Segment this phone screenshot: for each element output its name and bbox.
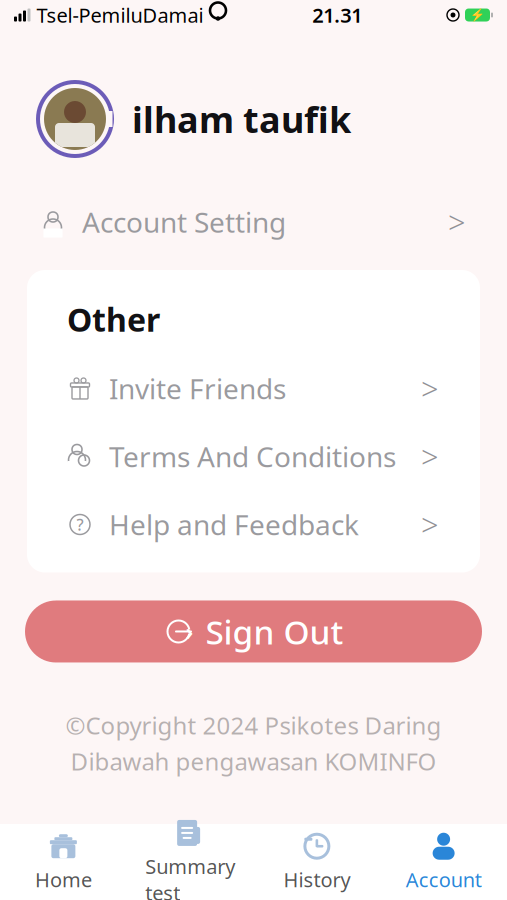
staticText: Other	[67, 298, 160, 340]
staticText: ›	[185, 616, 193, 646]
staticText: Sign Out	[205, 609, 343, 654]
button[interactable]: Account Setting	[0, 188, 507, 256]
staticText: ⚡	[470, 8, 485, 22]
button[interactable]: Invite Friends	[27, 354, 480, 422]
button[interactable]: History	[253, 826, 380, 898]
button[interactable]: Home	[0, 826, 127, 898]
staticText: Tsel-PemiluDamai	[36, 2, 203, 28]
button[interactable]: Account	[380, 826, 507, 898]
staticText: Home	[35, 866, 92, 893]
staticText: ?	[76, 514, 83, 535]
staticText: Terms And Conditions	[109, 438, 396, 475]
staticText: 21.31	[312, 2, 362, 28]
staticText: Summary test	[145, 853, 235, 900]
staticText: >	[421, 504, 439, 545]
staticText: ©Copyright 2024 Psikotes Daring	[65, 709, 441, 741]
staticText: ilham taufik	[132, 95, 351, 143]
button[interactable]: Terms And Conditions	[27, 422, 480, 490]
staticText: >	[421, 436, 439, 477]
staticText: Help and Feedback	[109, 506, 359, 543]
staticText: Dibawah pengawasan KOMINFO	[70, 745, 436, 777]
button[interactable]: ?	[27, 490, 480, 558]
button[interactable]: ›	[25, 600, 482, 662]
staticText: >	[421, 368, 439, 409]
staticText: >	[448, 202, 466, 242]
staticText: Invite Friends	[109, 370, 286, 407]
staticText: History	[283, 866, 350, 893]
staticText: Account Setting	[82, 203, 286, 241]
staticText: Account	[406, 866, 482, 893]
button[interactable]: Summary test	[127, 826, 254, 898]
